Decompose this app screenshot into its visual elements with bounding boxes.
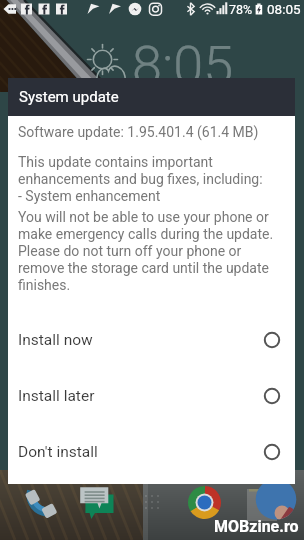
button[interactable]: Apps [142, 492, 162, 512]
button[interactable]: Chrome [188, 486, 221, 519]
staticText: Install later [18, 387, 95, 405]
staticText: You will not be able to use your phone o… [18, 209, 274, 294]
button[interactable]: Contact [256, 479, 297, 520]
button[interactable]: Don't install [8, 424, 295, 480]
staticText: Software update: 1.95.401.4 (61.4 MB) [18, 124, 259, 140]
staticText: 8:05 [132, 34, 234, 97]
staticText: System update [19, 88, 119, 106]
button[interactable]: Install later [8, 368, 295, 424]
staticText: 08:05 [267, 1, 301, 17]
staticText: Install now [18, 331, 93, 349]
button[interactable]: Phone [22, 489, 58, 525]
staticText: MOBzine.ro [214, 517, 299, 536]
staticText: 78% [229, 2, 253, 17]
button[interactable]: System update [8, 78, 295, 116]
staticText: Don't install [18, 443, 98, 461]
button[interactable]: Messages [78, 486, 116, 524]
staticText: This update contains important enhanceme… [18, 154, 263, 205]
button[interactable]: Install now [8, 312, 295, 368]
